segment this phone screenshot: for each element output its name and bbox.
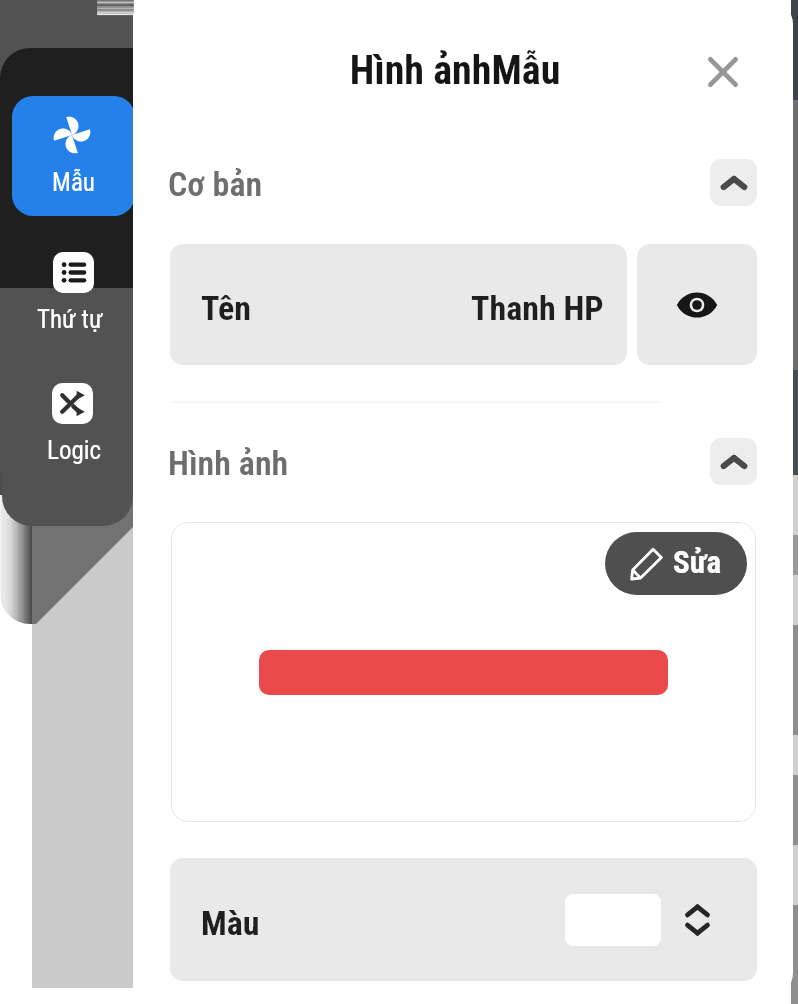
button[interactable]: Close [697, 46, 749, 98]
staticText: Cơ bản [168, 164, 263, 204]
staticText: Hình ảnhMẫu [133, 47, 785, 94]
button[interactable]: Sửa [605, 532, 747, 595]
button[interactable]: Thứ tự [15, 232, 135, 350]
staticText: Hình ảnh [168, 443, 289, 483]
button[interactable]: Mẫu [12, 96, 135, 216]
button[interactable]: Collapse Cơ bản [710, 159, 757, 206]
staticText: Thứ tự [37, 305, 103, 334]
button[interactable]: Change colour [672, 895, 722, 945]
button[interactable]: Collapse Hình ảnh [710, 438, 757, 485]
button[interactable]: Màu [170, 858, 757, 981]
staticText: Tên [201, 288, 251, 328]
staticText: Màu [201, 903, 260, 943]
button[interactable] [12, 96, 135, 216]
button[interactable]: Logic [15, 363, 135, 481]
staticText: Logic [47, 436, 102, 465]
staticText: Sửa [673, 544, 722, 580]
button[interactable]: Preview [637, 244, 757, 365]
staticText: Mẫu [52, 168, 95, 197]
button[interactable]: Tên [170, 244, 627, 365]
staticText: Thanh HP [471, 288, 604, 328]
